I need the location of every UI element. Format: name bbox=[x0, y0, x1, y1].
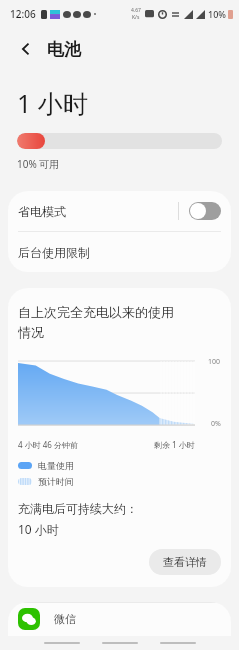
staticText: 电池 bbox=[47, 39, 81, 60]
staticText: 0% bbox=[211, 419, 221, 429]
button[interactable]: Power saving toggle bbox=[189, 202, 221, 220]
staticText: 4 小时 46 分钟前 bbox=[18, 439, 78, 450]
staticText: 电量使用 bbox=[38, 460, 74, 471]
staticText: 省电模式 bbox=[18, 204, 66, 219]
staticText: K/s bbox=[132, 14, 140, 21]
staticText: 预计时间 bbox=[38, 476, 74, 487]
staticText: 充满电后可持续大约： bbox=[18, 501, 138, 516]
staticText: 100 bbox=[208, 357, 221, 367]
staticText: 查看详情 bbox=[163, 555, 207, 569]
staticText: 1 小时 bbox=[17, 86, 88, 120]
staticText: 10% bbox=[208, 8, 226, 20]
button[interactable]: 微信 bbox=[8, 602, 231, 636]
staticText: 10% 可用 bbox=[17, 157, 60, 171]
button[interactable]: 后台使用限制 bbox=[8, 232, 231, 272]
staticText: 自上次完全充电以来的使用 情况 bbox=[18, 304, 174, 341]
staticText: 剩余 1 小时 bbox=[154, 439, 195, 450]
button[interactable]: Back bbox=[12, 35, 40, 63]
staticText: 10 小时 bbox=[18, 521, 59, 537]
button[interactable]: 省电模式 bbox=[8, 191, 231, 231]
staticText: 微信 bbox=[54, 612, 76, 626]
button[interactable]: 查看详情 bbox=[149, 549, 221, 575]
staticText: 4.67 bbox=[131, 7, 141, 14]
staticText: 12:06 bbox=[10, 7, 36, 21]
staticText: 后台使用限制 bbox=[18, 245, 90, 260]
